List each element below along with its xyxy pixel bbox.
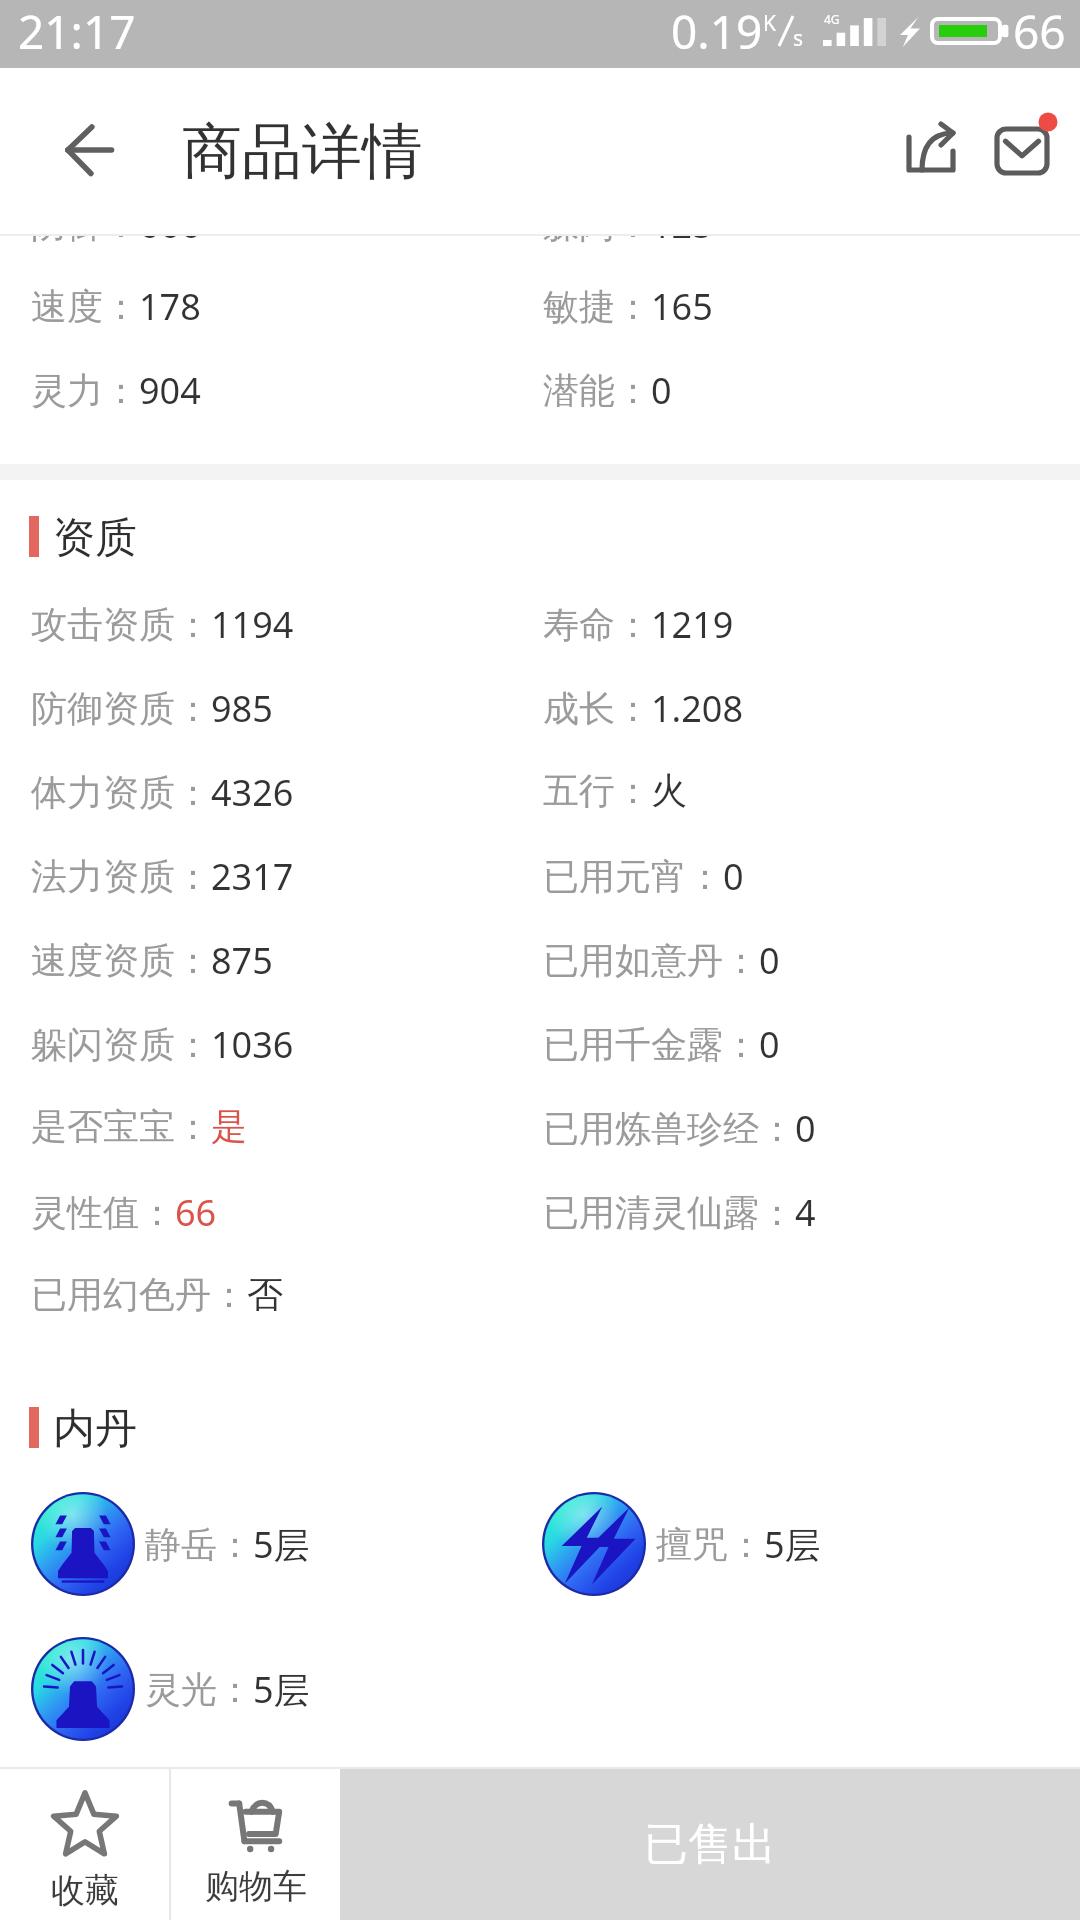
staticText: 0.19	[671, 0, 763, 63]
staticText: 0	[759, 1020, 780, 1069]
staticText: 收藏	[51, 1869, 119, 1912]
staticText: 已用清灵仙露：	[543, 1190, 795, 1235]
staticText: 是	[211, 1104, 247, 1149]
staticText: 0	[795, 1104, 816, 1153]
staticText: 灵力：	[31, 368, 139, 413]
staticText: 资质	[53, 512, 137, 565]
staticText: 2317	[211, 852, 294, 901]
staticText: 5层	[253, 1520, 310, 1569]
staticText: K	[763, 9, 776, 38]
button[interactable]: 已售出	[340, 1769, 1080, 1920]
staticText: 擅咒：	[656, 1522, 764, 1567]
button[interactable]: 收藏	[0, 1769, 169, 1920]
staticText: 4326	[211, 768, 294, 817]
staticText: 灵性值：	[31, 1190, 175, 1235]
staticText: 体力资质：	[31, 770, 211, 815]
staticText: 购物车	[205, 1865, 307, 1908]
staticText: 4	[795, 1188, 816, 1237]
staticText: 0	[723, 852, 744, 901]
staticText: 已用千金露：	[543, 1022, 759, 1067]
button[interactable]: Messages	[979, 105, 1071, 197]
staticText: 否	[247, 1272, 283, 1317]
staticText: 66	[175, 1188, 217, 1237]
staticText: 已用炼兽珍经：	[543, 1106, 795, 1151]
staticText: 已用元宵：	[543, 854, 723, 899]
staticText: 是否宝宝：	[31, 1104, 211, 1149]
button[interactable]: Share	[884, 100, 976, 192]
staticText: 躲闪：	[543, 202, 651, 247]
staticText: 内丹	[53, 1403, 137, 1456]
staticText: 已用如意丹：	[543, 938, 759, 983]
staticText: 125	[651, 200, 713, 249]
staticText: 5层	[764, 1520, 821, 1569]
staticText: 防御：	[31, 202, 139, 247]
staticText: 灵光：	[145, 1667, 253, 1712]
staticText: 1.208	[651, 684, 744, 733]
staticText: 5层	[253, 1665, 310, 1714]
staticText: 静岳：	[145, 1522, 253, 1567]
staticText: 速度资质：	[31, 938, 211, 983]
button[interactable]: 购物车	[171, 1769, 340, 1920]
staticText: 165	[651, 282, 713, 331]
staticText: 攻击资质：	[31, 602, 211, 647]
staticText: 1036	[211, 1020, 294, 1069]
staticText: 178	[139, 282, 201, 331]
staticText: 寿命：	[543, 602, 651, 647]
staticText: 1219	[651, 600, 734, 649]
staticText: 敏捷：	[543, 284, 651, 329]
staticText: 潜能：	[543, 368, 651, 413]
staticText: 已用幻色丹：	[31, 1272, 247, 1317]
staticText: 防御资质：	[31, 686, 211, 731]
button[interactable]: Back	[41, 102, 137, 198]
staticText: 4G	[824, 11, 840, 27]
staticText: 躲闪资质：	[31, 1022, 211, 1067]
staticText: 成长：	[543, 686, 651, 731]
staticText: 904	[139, 366, 201, 415]
staticText: 火	[651, 768, 687, 813]
staticText: 速度：	[31, 284, 139, 329]
staticText: 已售出	[644, 1817, 776, 1872]
staticText: 1194	[211, 600, 294, 649]
staticText: 875	[211, 936, 273, 985]
staticText: 法力资质：	[31, 854, 211, 899]
staticText: s	[793, 24, 804, 53]
staticText: 0	[651, 366, 672, 415]
staticText: 商品详情	[182, 114, 422, 190]
staticText: 66	[1013, 0, 1066, 63]
staticText: 666	[139, 200, 201, 249]
staticText: 五行：	[543, 768, 651, 813]
staticText: 985	[211, 684, 273, 733]
staticText: 0	[759, 936, 780, 985]
staticText: 21:17	[18, 0, 136, 63]
